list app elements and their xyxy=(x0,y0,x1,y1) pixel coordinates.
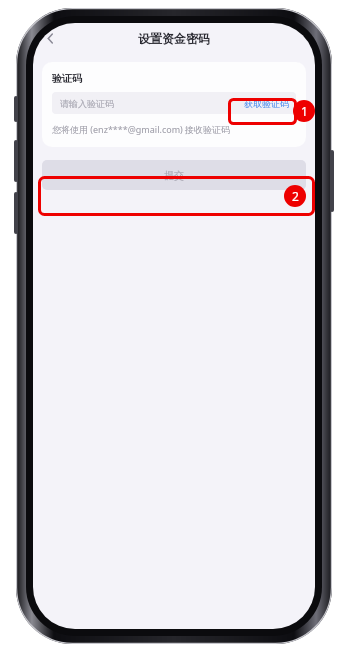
staticText: 设置资金密码 xyxy=(138,31,210,46)
staticText: 1 xyxy=(301,103,308,119)
staticText: 获取验证码 xyxy=(244,98,289,109)
staticText: 验证码 xyxy=(52,72,82,85)
button[interactable]: Back xyxy=(36,24,64,52)
staticText: 提交 xyxy=(164,169,184,182)
staticText: 请输入验证码 xyxy=(60,98,114,109)
staticText: 2 xyxy=(292,188,299,204)
button[interactable]: 获取验证码 xyxy=(237,94,296,113)
staticText: 您将使用 (enz****@gmail.com) 接收验证码 xyxy=(52,123,231,135)
button[interactable]: 提交 xyxy=(42,160,306,190)
